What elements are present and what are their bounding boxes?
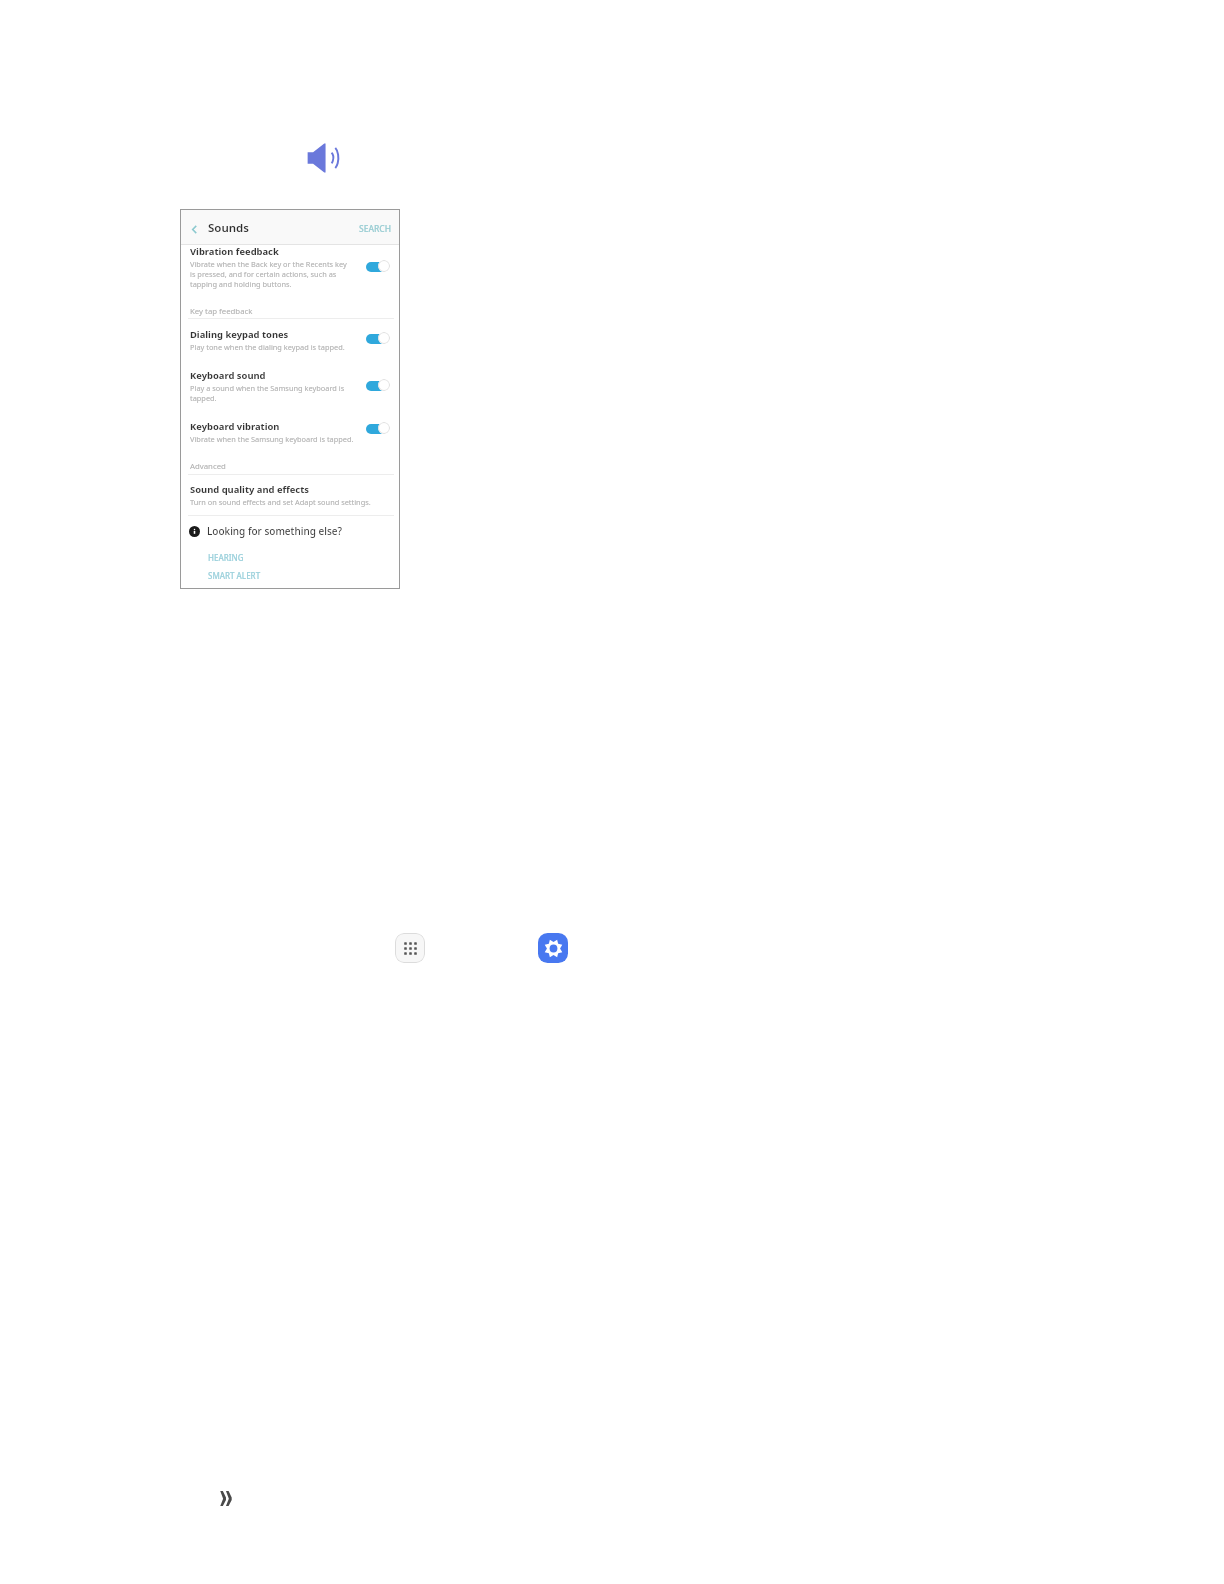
staticText: Looking for something else? bbox=[207, 524, 342, 538]
button[interactable]: Looking for something else? bbox=[189, 524, 342, 538]
staticText: Turn on sound effects and set Adapt soun… bbox=[190, 497, 371, 507]
button[interactable]: Keyboard sound bbox=[190, 369, 354, 403]
button[interactable]: SMART ALERT bbox=[208, 570, 261, 581]
staticText: Dialing keypad tones bbox=[190, 328, 289, 341]
staticText: Play tone when the dialing keypad is tap… bbox=[190, 342, 345, 352]
button[interactable]: Apps bbox=[395, 933, 425, 963]
button[interactable]: Sound quality and effects bbox=[190, 483, 386, 507]
button[interactable]: Back bbox=[186, 221, 202, 237]
staticText: Play a sound when the Samsung keyboard i… bbox=[190, 383, 354, 403]
button[interactable]: SEARCH bbox=[359, 223, 392, 235]
staticText: Keyboard vibration bbox=[190, 420, 280, 433]
staticText: SMART ALERT bbox=[208, 570, 261, 581]
button[interactable]: HEARING bbox=[208, 552, 244, 563]
button[interactable]: Toggle bbox=[366, 260, 389, 272]
other: Next bbox=[220, 1491, 233, 1506]
button[interactable]: Settings bbox=[538, 933, 568, 963]
other: Sound bbox=[307, 143, 339, 173]
staticText: Advanced bbox=[190, 461, 226, 472]
staticText: Keyboard sound bbox=[190, 369, 266, 382]
button[interactable]: Keyboard vibration bbox=[190, 420, 370, 444]
staticText: Vibrate when the Back key or the Recents… bbox=[190, 259, 354, 289]
staticText: Sounds bbox=[208, 220, 249, 236]
staticText: Key tap feedback bbox=[190, 306, 253, 317]
button[interactable]: Vibration feedback bbox=[190, 245, 354, 289]
button[interactable]: Dialing keypad tones bbox=[190, 328, 354, 352]
staticText: Sound quality and effects bbox=[190, 483, 309, 496]
staticText: HEARING bbox=[208, 552, 244, 563]
button[interactable]: Toggle bbox=[366, 379, 389, 391]
staticText: Vibrate when the Samsung keyboard is tap… bbox=[190, 434, 354, 444]
button[interactable]: Toggle bbox=[366, 422, 389, 434]
staticText: Vibration feedback bbox=[190, 245, 279, 258]
button[interactable]: Sounds bbox=[208, 220, 249, 236]
button[interactable]: Toggle bbox=[366, 332, 389, 344]
staticText: SEARCH bbox=[359, 223, 392, 235]
